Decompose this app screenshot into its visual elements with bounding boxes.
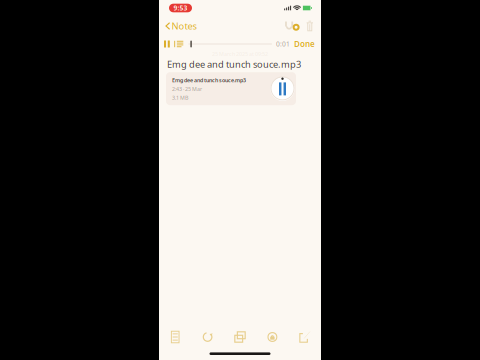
button[interactable]: Sync bbox=[191, 326, 224, 348]
button[interactable]: Locked notes bbox=[256, 326, 289, 348]
button[interactable]: Share bbox=[224, 326, 256, 348]
button[interactable]: Notes list bbox=[159, 326, 191, 348]
button[interactable]: Delete note bbox=[303, 18, 317, 34]
button[interactable]: Done bbox=[290, 37, 317, 51]
staticText: Notes bbox=[172, 20, 197, 32]
staticText: Emg dee and tunch souce.mp3 bbox=[167, 58, 301, 70]
button[interactable]: Notes bbox=[162, 17, 202, 35]
staticText: 2:43 · 25 Mar bbox=[172, 85, 202, 92]
staticText: Emg dee and tunch souce.mp3 bbox=[172, 77, 246, 84]
staticText: 3.1 MB bbox=[172, 94, 188, 101]
button[interactable]: Show transcript bbox=[172, 39, 185, 49]
staticText: 0:01 bbox=[276, 40, 290, 48]
staticText: 9:53 bbox=[173, 4, 187, 12]
staticText: Done bbox=[294, 39, 315, 49]
button[interactable]: Pause audio attachment bbox=[270, 77, 294, 101]
button[interactable]: New note bbox=[289, 326, 321, 348]
button[interactable]: Pause playback bbox=[162, 38, 172, 49]
button[interactable]: Share note bbox=[282, 18, 303, 34]
